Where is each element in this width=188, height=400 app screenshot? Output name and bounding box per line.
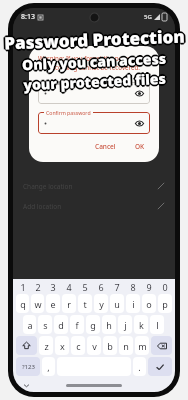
staticText: Only you can access bbox=[22, 48, 166, 73]
staticText: 1 bbox=[20, 281, 26, 293]
staticText: Only you can access bbox=[22, 50, 166, 75]
staticText: b bbox=[107, 340, 113, 352]
button[interactable]: o bbox=[142, 294, 156, 313]
staticText: 3 bbox=[50, 281, 56, 293]
button[interactable]: Add location bbox=[13, 196, 175, 216]
button[interactable]: Shift bbox=[16, 336, 37, 355]
staticText: Password Protection bbox=[5, 25, 186, 55]
button[interactable]: 8 bbox=[125, 280, 141, 293]
staticText: Password Protection bbox=[4, 25, 185, 55]
button[interactable]: Hide keyboard bbox=[21, 380, 32, 391]
staticText: q bbox=[20, 298, 26, 310]
button[interactable]: 5 bbox=[77, 280, 93, 293]
staticText: Only you can access bbox=[24, 49, 168, 74]
button[interactable]: r bbox=[62, 294, 76, 313]
button[interactable]: . bbox=[133, 357, 146, 376]
staticText: Only you can access bbox=[20, 49, 164, 74]
button[interactable]: j bbox=[118, 315, 132, 334]
button[interactable]: n bbox=[119, 336, 133, 355]
staticText: Cancel bbox=[95, 142, 116, 151]
button[interactable]: u bbox=[110, 294, 124, 313]
button[interactable]: ?123 bbox=[16, 357, 40, 376]
staticText: Password bbox=[46, 79, 70, 86]
button[interactable]: 3 bbox=[45, 280, 61, 293]
button[interactable]: w bbox=[31, 294, 44, 313]
staticText: Warning: If you forget the password, the… bbox=[38, 54, 150, 72]
button[interactable]: t bbox=[78, 294, 92, 313]
staticText: Add location bbox=[23, 202, 62, 211]
staticText: your protected files bbox=[24, 69, 167, 94]
button[interactable]: Show password bbox=[38, 112, 150, 134]
button[interactable]: d bbox=[54, 315, 68, 334]
staticText: u bbox=[114, 298, 120, 310]
staticText: OK bbox=[135, 142, 145, 151]
staticText: Password Protection bbox=[5, 24, 186, 54]
staticText: y bbox=[99, 298, 104, 310]
staticText: Only you can access bbox=[22, 49, 166, 74]
staticText: your protected files bbox=[23, 68, 166, 93]
button[interactable]: 2 bbox=[30, 280, 45, 293]
button[interactable]: y bbox=[94, 294, 108, 313]
staticText: your protected files bbox=[23, 71, 166, 96]
staticText: Password Protection bbox=[3, 25, 184, 54]
staticText: Password Protection bbox=[4, 26, 185, 56]
button[interactable]: z bbox=[39, 336, 53, 355]
button[interactable]: l bbox=[150, 315, 164, 334]
button[interactable]: Show password bbox=[133, 117, 146, 130]
staticText: 8:13 bbox=[21, 12, 35, 22]
button[interactable]: , bbox=[42, 357, 55, 376]
button[interactable]: i bbox=[126, 294, 140, 313]
button[interactable]: h bbox=[102, 315, 116, 334]
button[interactable]: Backspace bbox=[151, 336, 172, 355]
button[interactable]: Show password bbox=[38, 82, 150, 104]
staticText: 2 bbox=[35, 281, 41, 293]
staticText: your protected files bbox=[21, 69, 164, 94]
staticText: o bbox=[146, 298, 152, 310]
staticText: Only you can access bbox=[23, 48, 167, 73]
staticText: h bbox=[106, 319, 112, 331]
button[interactable]: v bbox=[87, 336, 101, 355]
button[interactable]: 9 bbox=[141, 280, 157, 293]
button[interactable]: p bbox=[158, 294, 172, 313]
staticText: Only you can access bbox=[23, 50, 167, 75]
button[interactable]: m bbox=[135, 336, 149, 355]
button[interactable]: Cancel bbox=[90, 139, 121, 154]
staticText: c bbox=[76, 340, 81, 352]
button[interactable]: 0 bbox=[157, 280, 173, 293]
button[interactable]: 7 bbox=[109, 280, 125, 293]
staticText: 8 bbox=[130, 281, 136, 293]
staticText: , bbox=[47, 361, 50, 373]
button[interactable]: Enter bbox=[148, 357, 172, 376]
button[interactable]: g bbox=[86, 315, 100, 334]
staticText: s bbox=[43, 319, 48, 331]
button[interactable]: c bbox=[71, 336, 85, 355]
staticText: 4 bbox=[66, 281, 72, 293]
button[interactable]: q bbox=[16, 294, 29, 313]
button[interactable]: k bbox=[134, 315, 148, 334]
button[interactable]: a bbox=[23, 315, 36, 334]
button[interactable]: b bbox=[103, 336, 117, 355]
staticText: Password Protection bbox=[3, 24, 184, 53]
button[interactable]: 6 bbox=[93, 280, 109, 293]
staticText: Password Protection bbox=[2, 25, 183, 54]
button[interactable]: x bbox=[55, 336, 69, 355]
staticText: r bbox=[67, 298, 71, 310]
button[interactable]: OK bbox=[130, 139, 150, 154]
staticText: m bbox=[138, 340, 147, 352]
button[interactable]: Change location bbox=[13, 176, 175, 196]
staticText: Password Protection bbox=[6, 24, 187, 54]
button[interactable]: s bbox=[38, 315, 52, 334]
button[interactable]: f bbox=[70, 315, 84, 334]
staticText: w bbox=[34, 298, 42, 310]
staticText: Only you can access bbox=[22, 51, 166, 76]
button[interactable]: Show password bbox=[133, 87, 146, 100]
staticText: Password Protection bbox=[3, 22, 185, 52]
staticText: v bbox=[92, 340, 97, 352]
button[interactable]: 1 bbox=[15, 280, 30, 293]
staticText: your protected files bbox=[22, 69, 165, 94]
button[interactable]: e bbox=[46, 294, 60, 313]
staticText: your protected files bbox=[24, 68, 167, 93]
button[interactable]: 4 bbox=[61, 280, 77, 293]
staticText: Only you can access bbox=[22, 47, 166, 72]
